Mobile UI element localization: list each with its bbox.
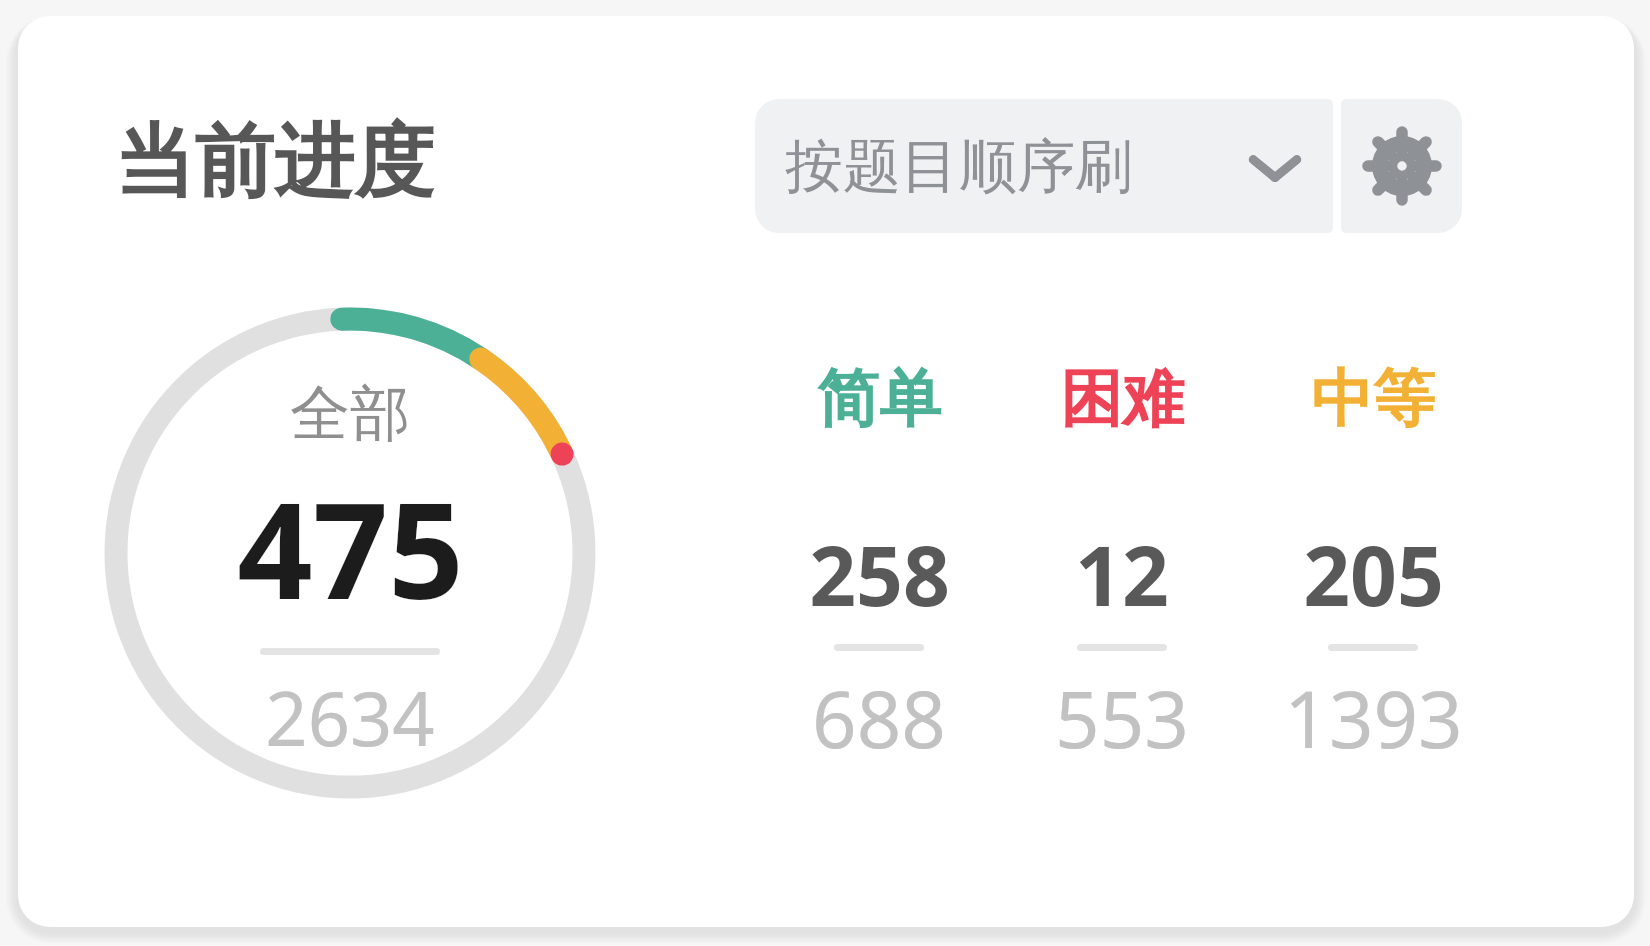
staticText: 当前进度 <box>114 112 434 213</box>
staticText: 按题目顺序刷 <box>785 130 1133 203</box>
button[interactable]: 简单 <box>789 360 969 771</box>
staticText: 全部 <box>290 376 410 452</box>
staticText: 475 <box>237 458 464 638</box>
staticText: 258 <box>809 518 950 630</box>
staticText: 2634 <box>265 667 435 768</box>
staticText: 205 <box>1303 518 1444 630</box>
button[interactable]: 中等 <box>1283 360 1463 771</box>
staticText: 688 <box>812 665 946 771</box>
button[interactable]: 按题目顺序刷 <box>755 99 1333 233</box>
staticText: 困难 <box>1060 360 1184 438</box>
staticText: 1393 <box>1284 665 1463 771</box>
button[interactable]: 当前进度 <box>114 112 434 213</box>
staticText: 553 <box>1055 665 1189 771</box>
button[interactable]: Settings <box>1341 99 1462 233</box>
staticText: 12 <box>1075 518 1169 630</box>
staticText: 中等 <box>1311 360 1435 438</box>
staticText: 简单 <box>817 360 941 438</box>
button[interactable]: 困难 <box>1032 360 1212 771</box>
